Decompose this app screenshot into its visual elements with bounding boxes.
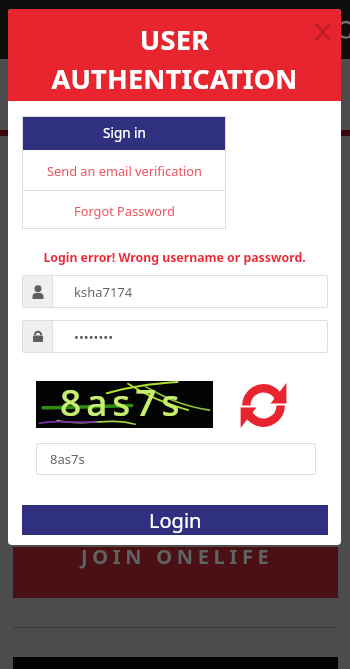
button[interactable]: Close — [310, 19, 336, 45]
staticText: Forgot Password — [74, 202, 175, 219]
button[interactable]: •••••••• — [22, 320, 328, 353]
staticText: Login — [149, 507, 202, 534]
button[interactable]: Send an email verification — [22, 150, 226, 190]
staticText: Sign in — [103, 124, 146, 142]
staticText: ksha7174 — [74, 283, 133, 301]
button[interactable]: Refresh captcha — [238, 380, 288, 430]
button[interactable]: Sign in — [22, 116, 226, 150]
button[interactable]: 8as7s — [36, 443, 316, 475]
button[interactable]: ksha7174 — [22, 275, 328, 308]
staticText: USER AUTHENTICATION — [8, 21, 341, 97]
staticText: 8as7s — [50, 450, 85, 468]
button[interactable]: Search — [337, 21, 350, 47]
button[interactable]: Forgot Password — [22, 191, 226, 229]
staticText: Login error! Wrong username or password. — [8, 249, 341, 266]
staticText: •••••••• — [74, 328, 114, 346]
staticText: 8as7s — [60, 376, 185, 423]
staticText: Send an email verification — [47, 162, 202, 179]
button[interactable]: Login — [22, 505, 328, 535]
staticText: JOIN ONELIFE — [81, 543, 274, 570]
button[interactable]: JOIN ONELIFE — [13, 547, 338, 598]
